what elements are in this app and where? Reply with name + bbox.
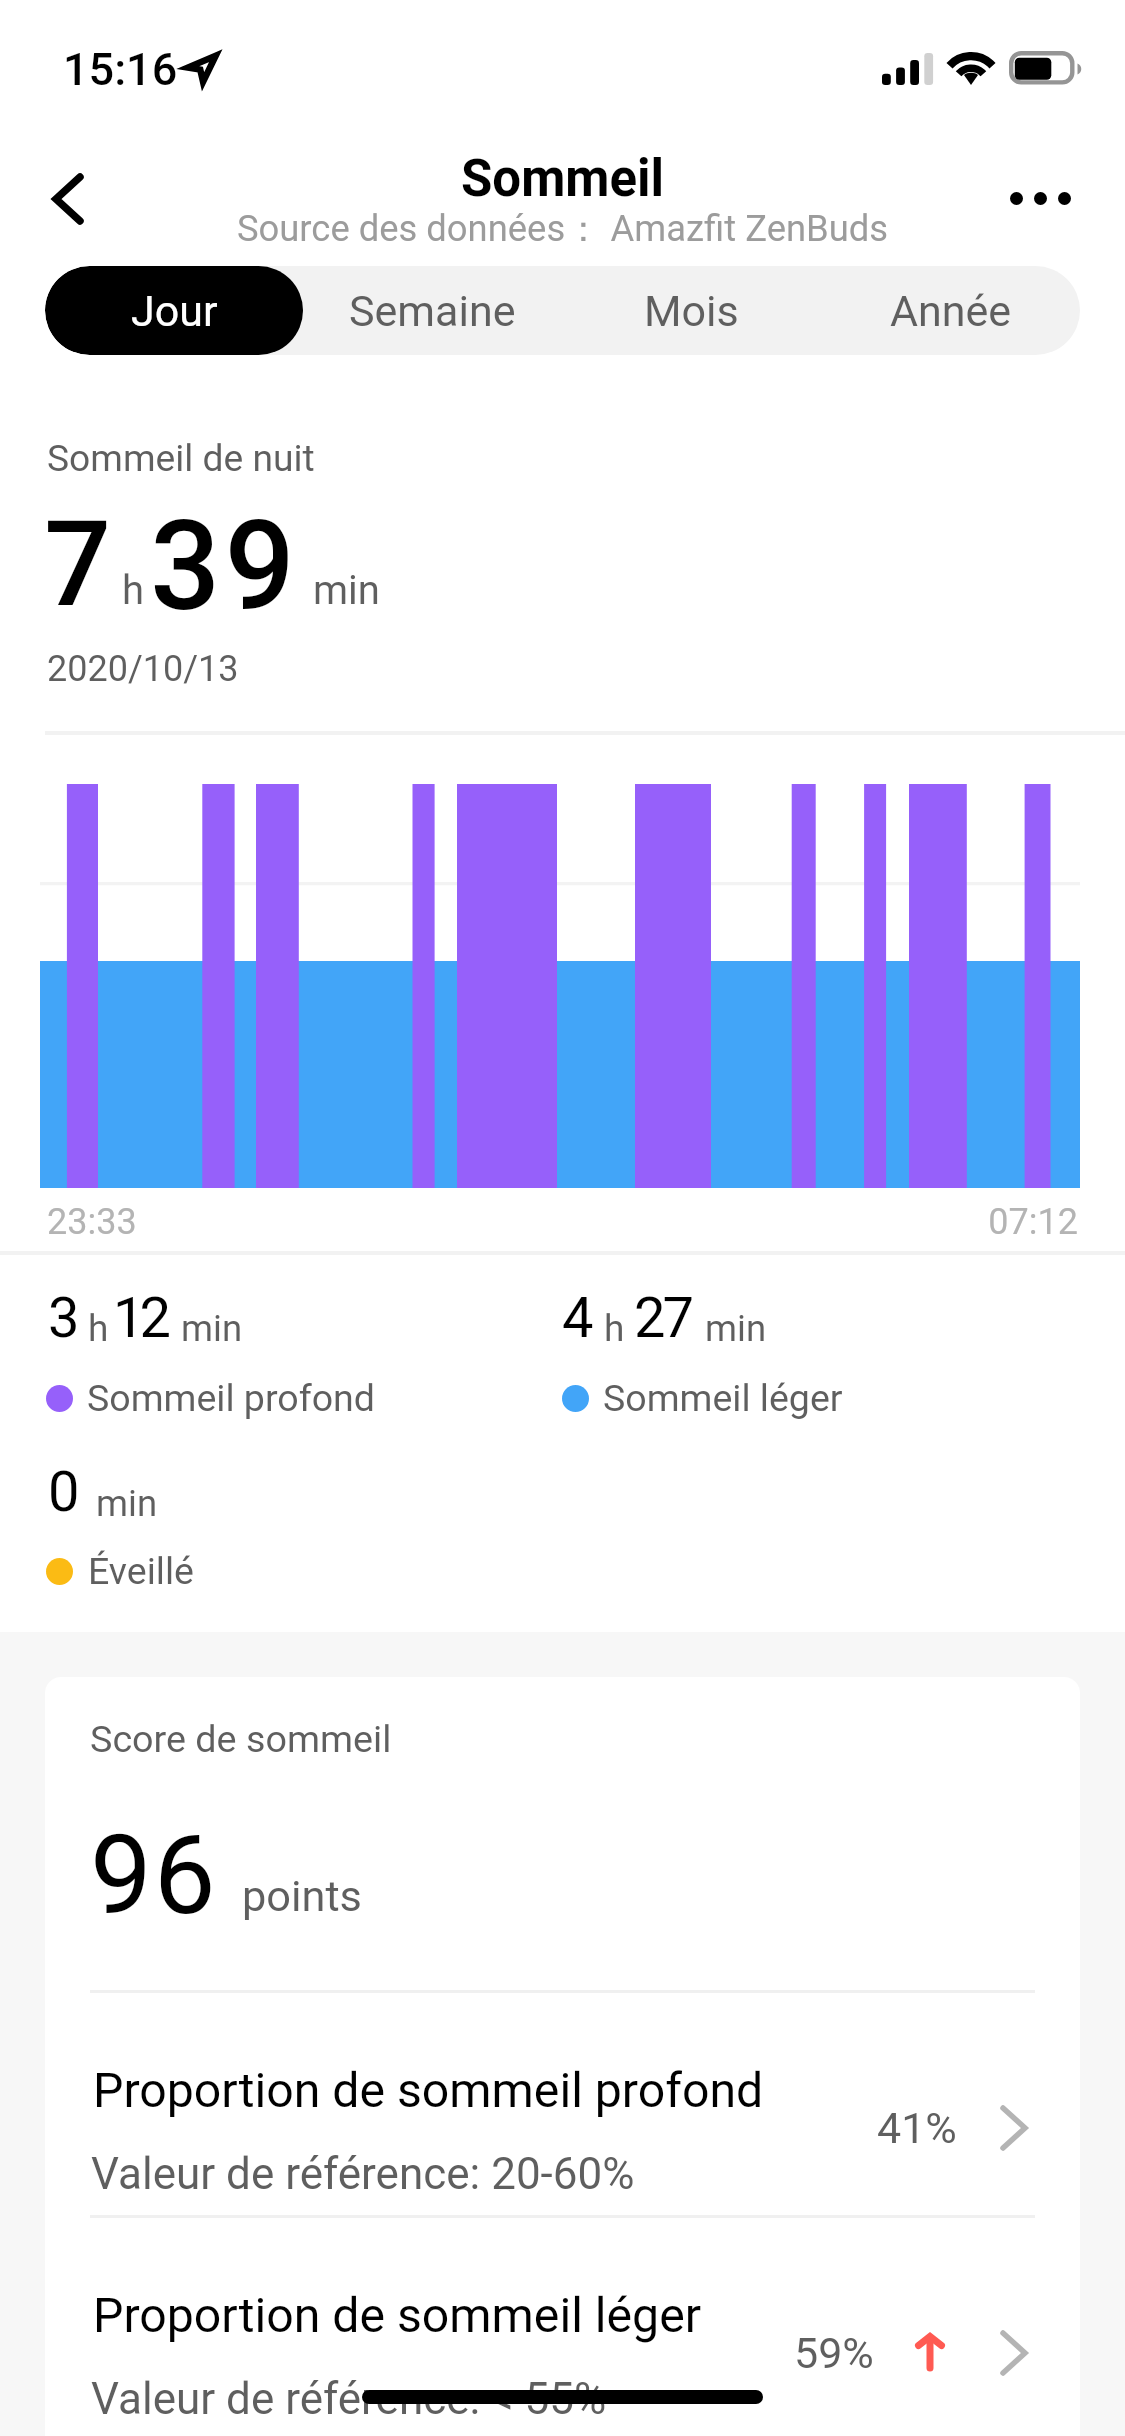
button[interactable]: Proportion de sommeil léger: [45, 2217, 1080, 2436]
staticText: h: [604, 1307, 625, 1350]
button[interactable]: Jour: [45, 266, 303, 355]
staticText: Proportion de sommeil profond: [93, 2062, 764, 2118]
staticText: Sommeil: [0, 149, 1125, 209]
button[interactable]: More options: [995, 160, 1085, 236]
staticText: min: [705, 1307, 767, 1350]
other: Location: [186, 54, 217, 83]
button[interactable]: Back: [20, 155, 116, 245]
staticText: h: [88, 1307, 109, 1350]
staticText: Éveillé: [88, 1549, 194, 1593]
staticText: 4: [562, 1285, 594, 1351]
button[interactable]: Mois: [562, 266, 821, 355]
staticText: Score de sommeil: [90, 1717, 392, 1761]
staticText: min: [181, 1307, 243, 1350]
staticText: 0: [48, 1459, 80, 1525]
staticText: 59%: [794, 2328, 874, 2378]
staticText: 96: [90, 1811, 218, 1940]
staticText: 3: [48, 1285, 80, 1351]
staticText: Valeur de référence: < 55%: [91, 2373, 607, 2425]
staticText: 41%: [877, 2103, 957, 2153]
staticText: Sommeil léger: [603, 1376, 843, 1420]
staticText: min: [313, 567, 380, 614]
button[interactable]: Année: [821, 266, 1080, 355]
button[interactable]: Proportion de sommeil profond: [45, 1992, 1080, 2215]
staticText: points: [242, 1871, 362, 1922]
staticText: Semaine: [349, 286, 516, 336]
staticText: min: [96, 1482, 158, 1525]
staticText: 23:33: [47, 1201, 137, 1243]
staticText: Sommeil profond: [87, 1376, 375, 1420]
staticText: Année: [890, 286, 1012, 336]
staticText: Jour: [131, 286, 218, 336]
staticText: 12: [113, 1285, 166, 1351]
staticText: Mois: [644, 286, 739, 336]
staticText: Source des données： Amazfit ZenBuds: [0, 206, 1125, 252]
button[interactable]: Semaine: [303, 266, 562, 355]
staticText: 15:16: [63, 43, 178, 96]
staticText: 07:12: [0, 1201, 1078, 1243]
staticText: Sommeil de nuit: [47, 436, 315, 480]
staticText: Proportion de sommeil léger: [93, 2287, 702, 2343]
staticText: 27: [634, 1285, 691, 1351]
staticText: 2020/10/13: [47, 648, 239, 690]
staticText: h: [122, 567, 145, 614]
staticText: Valeur de référence: 20-60%: [91, 2148, 635, 2200]
staticText: 7: [44, 496, 112, 634]
staticText: 39: [150, 494, 299, 639]
